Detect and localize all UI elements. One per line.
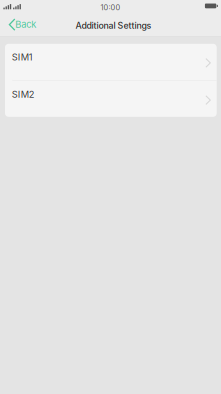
staticText: 10:00 xyxy=(100,3,120,12)
button[interactable]: SIM2 xyxy=(5,81,217,117)
staticText: Back xyxy=(15,19,36,30)
staticText: Additional Settings xyxy=(75,20,151,31)
button[interactable]: Back xyxy=(0,15,40,36)
staticText: SIM2 xyxy=(12,89,35,100)
staticText: SIM1 xyxy=(12,51,33,63)
button[interactable]: SIM1 xyxy=(5,43,217,80)
